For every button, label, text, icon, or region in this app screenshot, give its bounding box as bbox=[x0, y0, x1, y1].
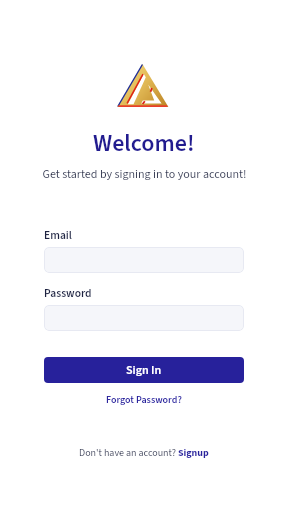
staticText: Get started by signing in to your accoun… bbox=[42, 166, 247, 183]
staticText: Email bbox=[44, 227, 72, 243]
staticText: Password bbox=[44, 285, 92, 301]
button[interactable]: Sign In bbox=[44, 357, 244, 383]
staticText: Welcome! bbox=[93, 126, 195, 160]
button[interactable]: Password input bbox=[44, 305, 244, 331]
staticText: Sign In bbox=[126, 362, 162, 379]
button[interactable]: Forgot Password? bbox=[106, 393, 182, 407]
button[interactable]: Don't have an account? Signup bbox=[79, 446, 209, 460]
button[interactable]: Email input bbox=[44, 247, 244, 273]
